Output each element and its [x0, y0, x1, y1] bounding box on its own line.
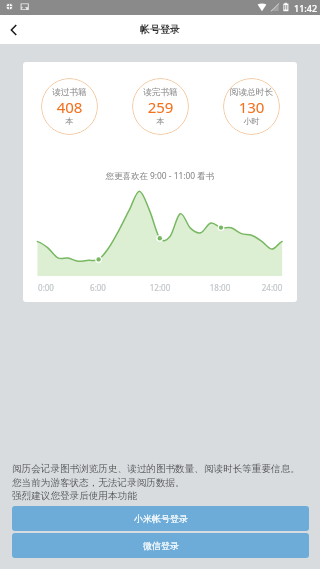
button[interactable]: 阅读总时长: [223, 78, 280, 135]
staticText: 11:42: [294, 2, 318, 14]
button[interactable]: 读过书籍: [41, 78, 98, 135]
staticText: 阅历会记录图书浏览历史、读过的图书数量、阅读时长等重要信息。 您当前为游客状态，…: [12, 463, 300, 502]
staticText: 小米帐号登录: [134, 513, 188, 524]
staticText: 读过书籍: [41, 87, 98, 98]
staticText: 130: [223, 97, 280, 117]
staticText: 259: [132, 97, 189, 117]
staticText: 408: [41, 97, 98, 117]
staticText: 小时: [223, 116, 280, 126]
staticText: 您更喜欢在 9:00 - 11:00 看书: [23, 170, 297, 181]
staticText: 12:00: [140, 282, 180, 293]
staticText: 本: [132, 116, 189, 126]
staticText: 本: [41, 116, 98, 126]
button[interactable]: Back: [0, 16, 28, 44]
staticText: 0:00: [26, 282, 66, 293]
staticText: 阅读总时长: [223, 87, 280, 98]
staticText: 24:00: [252, 282, 292, 293]
staticText: 18:00: [200, 282, 240, 293]
staticText: 读完书籍: [132, 87, 189, 98]
button[interactable]: 微信登录: [12, 533, 309, 558]
button[interactable]: 读完书籍: [132, 78, 189, 135]
staticText: 6:00: [78, 282, 118, 293]
staticText: 微信登录: [143, 540, 179, 551]
staticText: 帐号登录: [140, 23, 180, 36]
button[interactable]: 小米帐号登录: [12, 506, 309, 531]
